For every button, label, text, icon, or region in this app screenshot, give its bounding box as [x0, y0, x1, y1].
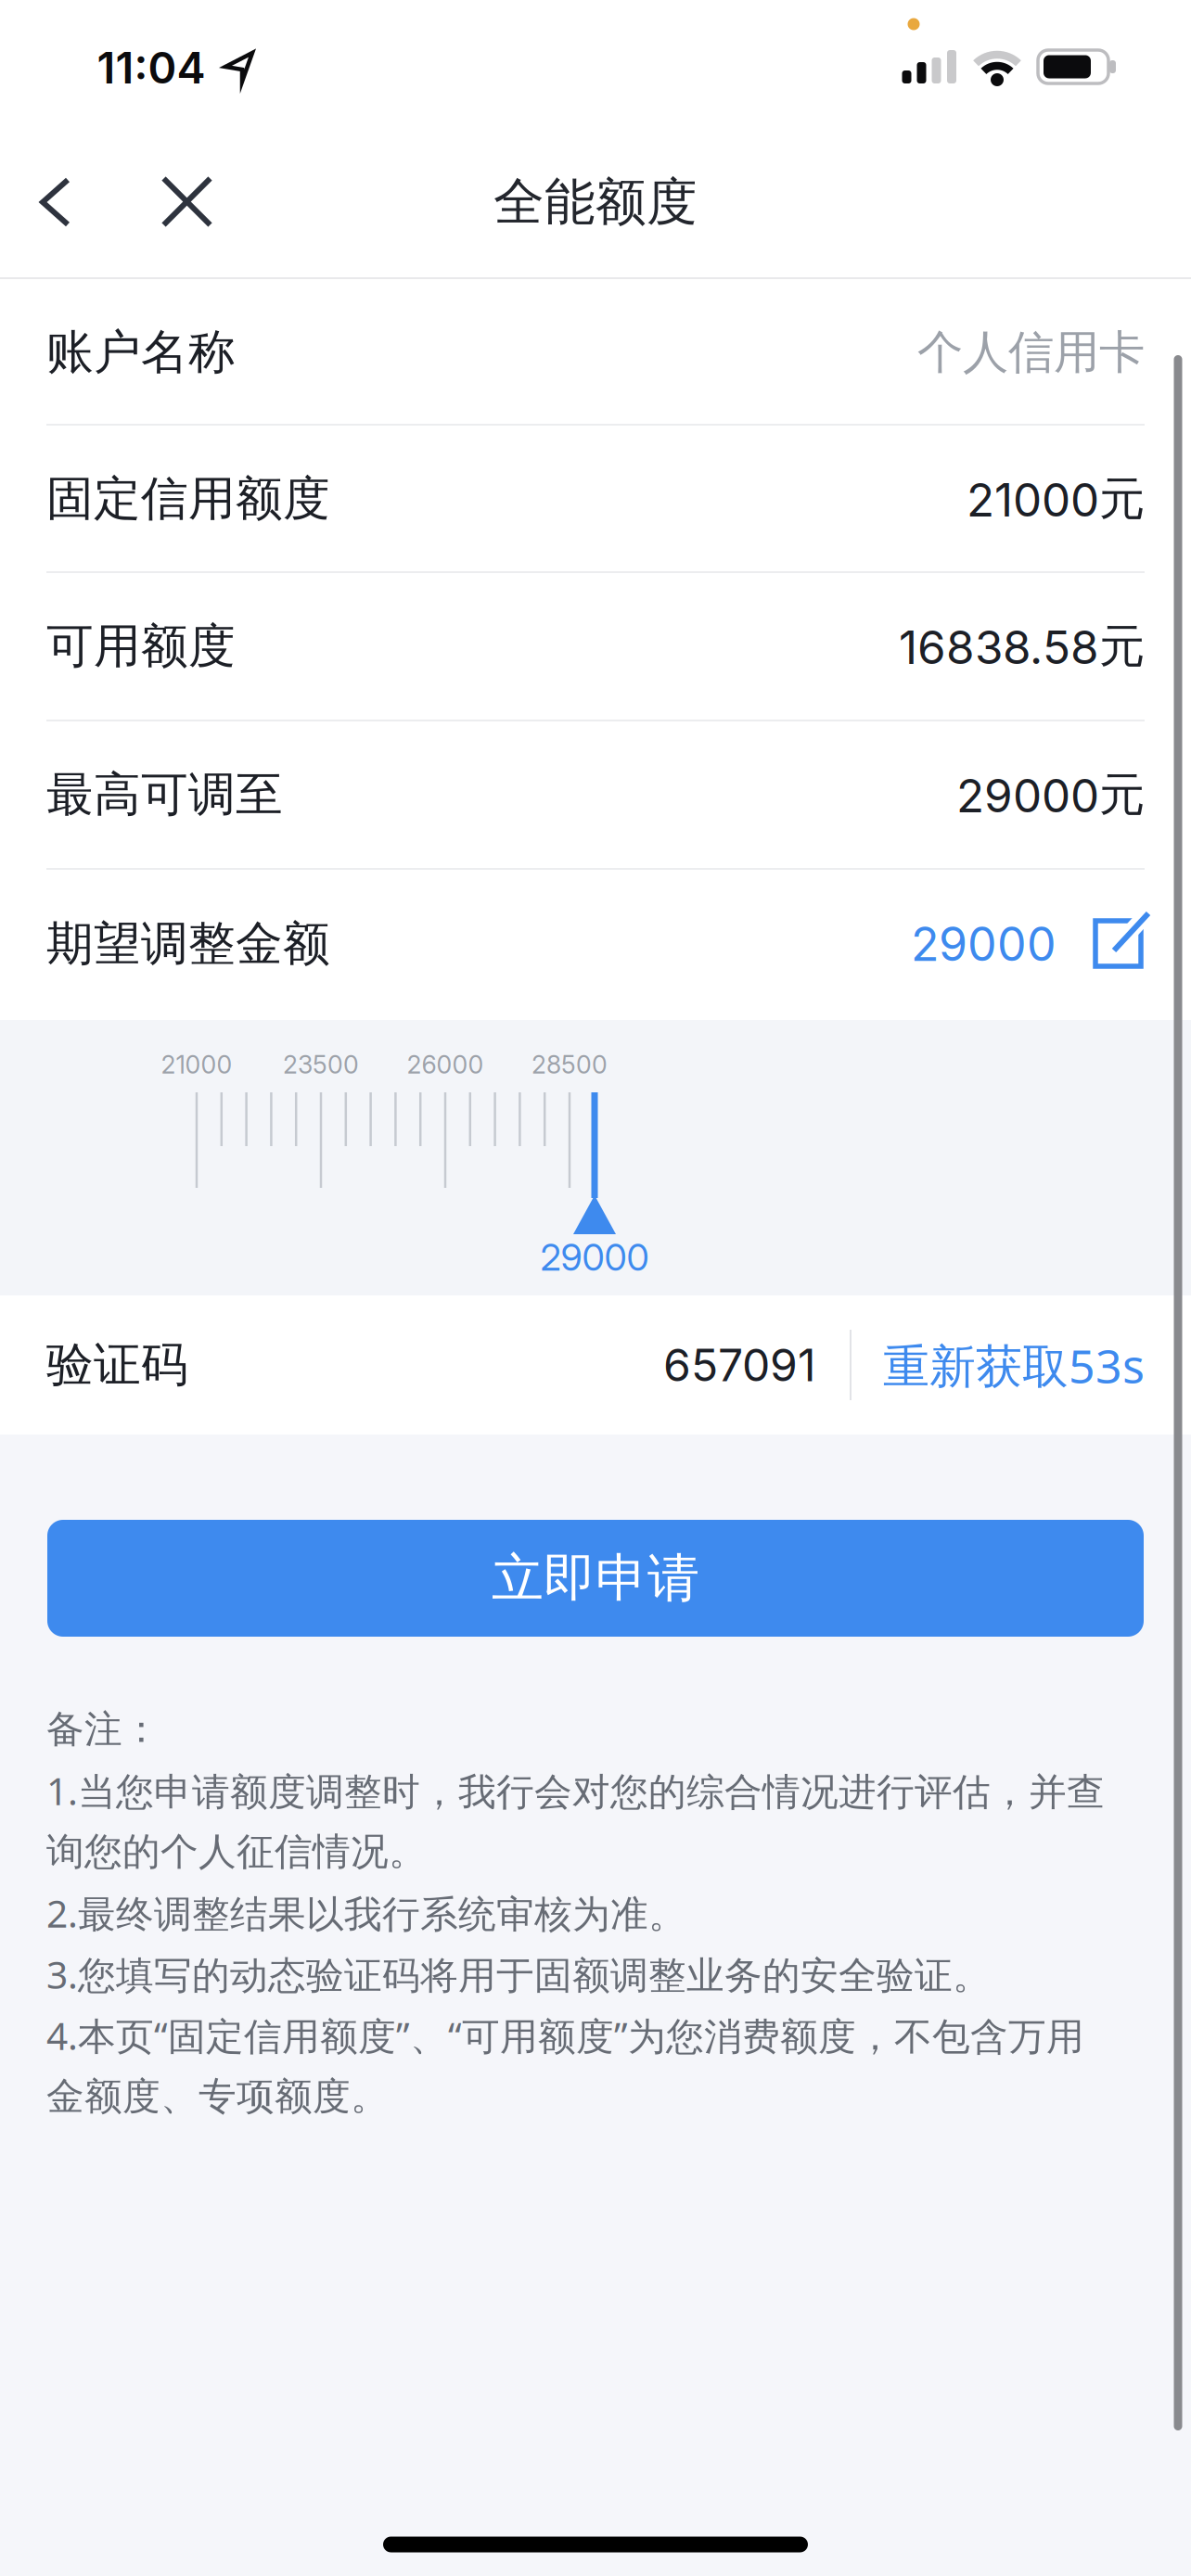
staticText: 29000: [911, 916, 1057, 972]
staticText: 全能额度: [493, 170, 698, 234]
staticText: 11:04: [97, 42, 205, 94]
staticText: 备注：: [46, 1706, 160, 1753]
staticText: 可用额度: [46, 617, 236, 676]
staticText: 3.您填写的动态验证码将用于固额调整业务的安全验证。: [46, 1949, 991, 2000]
button[interactable]: 重新获取53s: [883, 1333, 1145, 1396]
staticText: 4.本页“固定信用额度”、“可用额度”为您消费额度，不包含万用: [46, 2010, 1084, 2061]
staticText: 23500: [283, 1050, 359, 1080]
staticText: 657091: [663, 1338, 816, 1392]
staticText: 16838.58元: [899, 617, 1145, 675]
staticText: 立即申请: [492, 1546, 699, 1611]
staticText: 21000元: [967, 470, 1145, 528]
staticText: 21000: [161, 1050, 232, 1080]
staticText: 个人信用卡: [917, 324, 1145, 381]
staticText: 询您的个人征信情况。: [46, 1828, 427, 1876]
staticText: 重新获取53s: [883, 1333, 1145, 1396]
staticText: 最高可调至: [46, 765, 283, 824]
staticText: 验证码: [46, 1335, 188, 1395]
staticText: 1.当您申请额度调整时，我行会对您的综合情况进行评估，并查: [46, 1765, 1105, 1816]
button[interactable]: Edit: [1093, 918, 1145, 970]
button[interactable]: Back: [24, 160, 87, 244]
staticText: 28500: [531, 1050, 608, 1080]
staticText: 29000元: [956, 766, 1145, 823]
button[interactable]: 立即申请: [47, 1520, 1144, 1637]
staticText: 账户名称: [46, 323, 236, 382]
staticText: 金额度、专项额度。: [46, 2073, 389, 2120]
staticText: 2.最终调整结果以我行系统审核为准。: [46, 1887, 686, 1939]
staticText: 固定信用额度: [46, 469, 330, 528]
staticText: 29000: [540, 1235, 649, 1279]
staticText: 26000: [407, 1050, 484, 1080]
staticText: 期望调整金额: [46, 914, 330, 974]
button[interactable]: Close: [145, 160, 230, 244]
